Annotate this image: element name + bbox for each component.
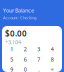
button[interactable]: 3: [32, 46, 45, 53]
button[interactable]: 6: [18, 56, 32, 63]
staticText: 0: [24, 66, 27, 72]
staticText: 6: [24, 56, 27, 63]
button[interactable]: 5: [5, 56, 18, 63]
button[interactable]: .: [32, 66, 45, 72]
staticText: 8: [51, 56, 54, 63]
staticText: Account · Checking: [3, 15, 36, 20]
button[interactable]: 7: [32, 56, 45, 63]
button[interactable]: =: [45, 66, 59, 72]
staticText: $0.00: [5, 28, 27, 39]
button[interactable]: 2: [18, 46, 32, 53]
staticText: 1: [10, 46, 13, 53]
staticText: 4: [51, 46, 54, 53]
staticText: .: [38, 66, 39, 72]
staticText: 2: [24, 46, 27, 53]
staticText: Your Balance: [3, 7, 34, 14]
staticText: 5: [10, 56, 13, 63]
button[interactable]: 1: [5, 46, 18, 53]
staticText: 7: [37, 56, 40, 63]
staticText: +3,104: [5, 39, 21, 46]
button[interactable]: 9: [5, 66, 18, 72]
button[interactable]: 4: [45, 46, 59, 53]
button[interactable]: 8: [45, 56, 59, 63]
staticText: 9: [10, 66, 13, 72]
staticText: 3: [37, 46, 40, 53]
button[interactable]: 0: [18, 66, 32, 72]
staticText: =: [51, 66, 54, 72]
